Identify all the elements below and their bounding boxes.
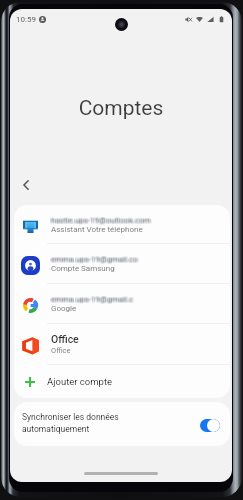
staticText: emma.ups-19@gmail.com — [50, 296, 136, 305]
button[interactable]: emma.ups-19@gmail.com — [14, 284, 230, 323]
staticText: hastie.ups-19@outlook.com — [52, 217, 152, 226]
staticText: emma.ups-19@gmail.com — [51, 255, 139, 264]
staticText: emma.ups-19@gmail.com — [52, 256, 140, 265]
staticText: emma.ups-19@gmail.com — [50, 256, 138, 265]
staticText: hastie.ups-19@outlook.com — [50, 216, 150, 225]
staticText: emma.ups-19@gmail.com — [50, 255, 138, 264]
staticText: hastie.ups-19@outlook.com — [50, 215, 150, 224]
staticText: emma.ups-19@gmail.com — [50, 294, 136, 303]
staticText: hastie.ups-19@outlook.com — [50, 217, 150, 226]
staticText: emma.ups-19@gmail.com — [52, 254, 140, 263]
button[interactable]: Office — [14, 324, 230, 364]
button[interactable]: hastie.ups-19@outlook.com — [14, 205, 230, 243]
staticText: emma.ups-19@gmail.com — [51, 254, 139, 263]
staticText: emma.ups-19@gmail.com — [52, 296, 138, 305]
staticText: hastie.ups-19@outlook.com — [51, 215, 151, 224]
staticText: Ajouter compte — [47, 376, 113, 387]
staticText: emma.ups-19@gmail.com — [50, 254, 138, 263]
staticText: hastie.ups-19@outlook.com — [52, 215, 152, 224]
staticText: emma.ups-19@gmail.com — [51, 296, 137, 305]
staticText: emma.ups-19@gmail.com — [52, 255, 140, 264]
staticText: hastie.ups-19@outlook.com — [52, 216, 152, 225]
staticText: hastie.ups-19@outlook.com — [52, 217, 152, 226]
staticText: emma.ups-19@gmail.com — [52, 295, 138, 304]
staticText: emma.ups-19@gmail.com — [50, 295, 136, 304]
button[interactable]: Synchroniser les données automatiquement — [14, 402, 230, 446]
staticText: emma.ups-19@gmail.com — [50, 294, 136, 303]
staticText: hastie.ups-19@outlook.com — [50, 217, 150, 226]
button[interactable]: Back — [14, 173, 38, 197]
staticText: emma.ups-19@gmail.com — [50, 255, 138, 264]
staticText: Assistant Votre téléphone — [51, 225, 143, 234]
staticText: Synchroniser les données automatiquement — [22, 412, 201, 434]
staticText: hastie.ups-19@outlook.com — [52, 216, 152, 225]
staticText: emma.ups-19@gmail.com — [52, 296, 138, 305]
staticText: emma.ups-19@gmail.com — [52, 294, 138, 303]
staticText: Office — [51, 333, 79, 345]
staticText: Compte Samsung — [51, 264, 115, 273]
staticText: emma.ups-19@gmail.com — [52, 255, 140, 264]
staticText: Google — [51, 304, 77, 313]
staticText: emma.ups-19@gmail.com — [50, 256, 138, 265]
staticText: emma.ups-19@gmail.com — [52, 294, 138, 303]
staticText: hastie.ups-19@outlook.com — [51, 217, 151, 226]
staticText: hastie.ups-19@outlook.com — [52, 215, 152, 224]
staticText: emma.ups-19@gmail.com — [52, 295, 138, 304]
staticText: emma.ups-19@gmail.com — [51, 294, 137, 303]
staticText: emma.ups-19@gmail.com — [50, 296, 136, 305]
staticText: 10:59 — [16, 15, 36, 24]
staticText: Office — [51, 346, 71, 355]
staticText: Comptes — [10, 96, 232, 121]
staticText: emma.ups-19@gmail.com — [52, 256, 140, 265]
staticText: emma.ups-19@gmail.com — [51, 256, 139, 265]
staticText: emma.ups-19@gmail.com — [51, 295, 137, 304]
button[interactable]: Ajouter compte — [14, 365, 230, 398]
staticText: hastie.ups-19@outlook.com — [50, 215, 150, 224]
staticText: hastie.ups-19@outlook.com — [51, 216, 151, 225]
staticText: emma.ups-19@gmail.com — [50, 254, 138, 263]
button[interactable]: emma.ups-19@gmail.com — [14, 244, 230, 283]
staticText: emma.ups-19@gmail.com — [52, 254, 140, 263]
staticText: emma.ups-19@gmail.com — [50, 295, 136, 304]
staticText: hastie.ups-19@outlook.com — [50, 216, 150, 225]
